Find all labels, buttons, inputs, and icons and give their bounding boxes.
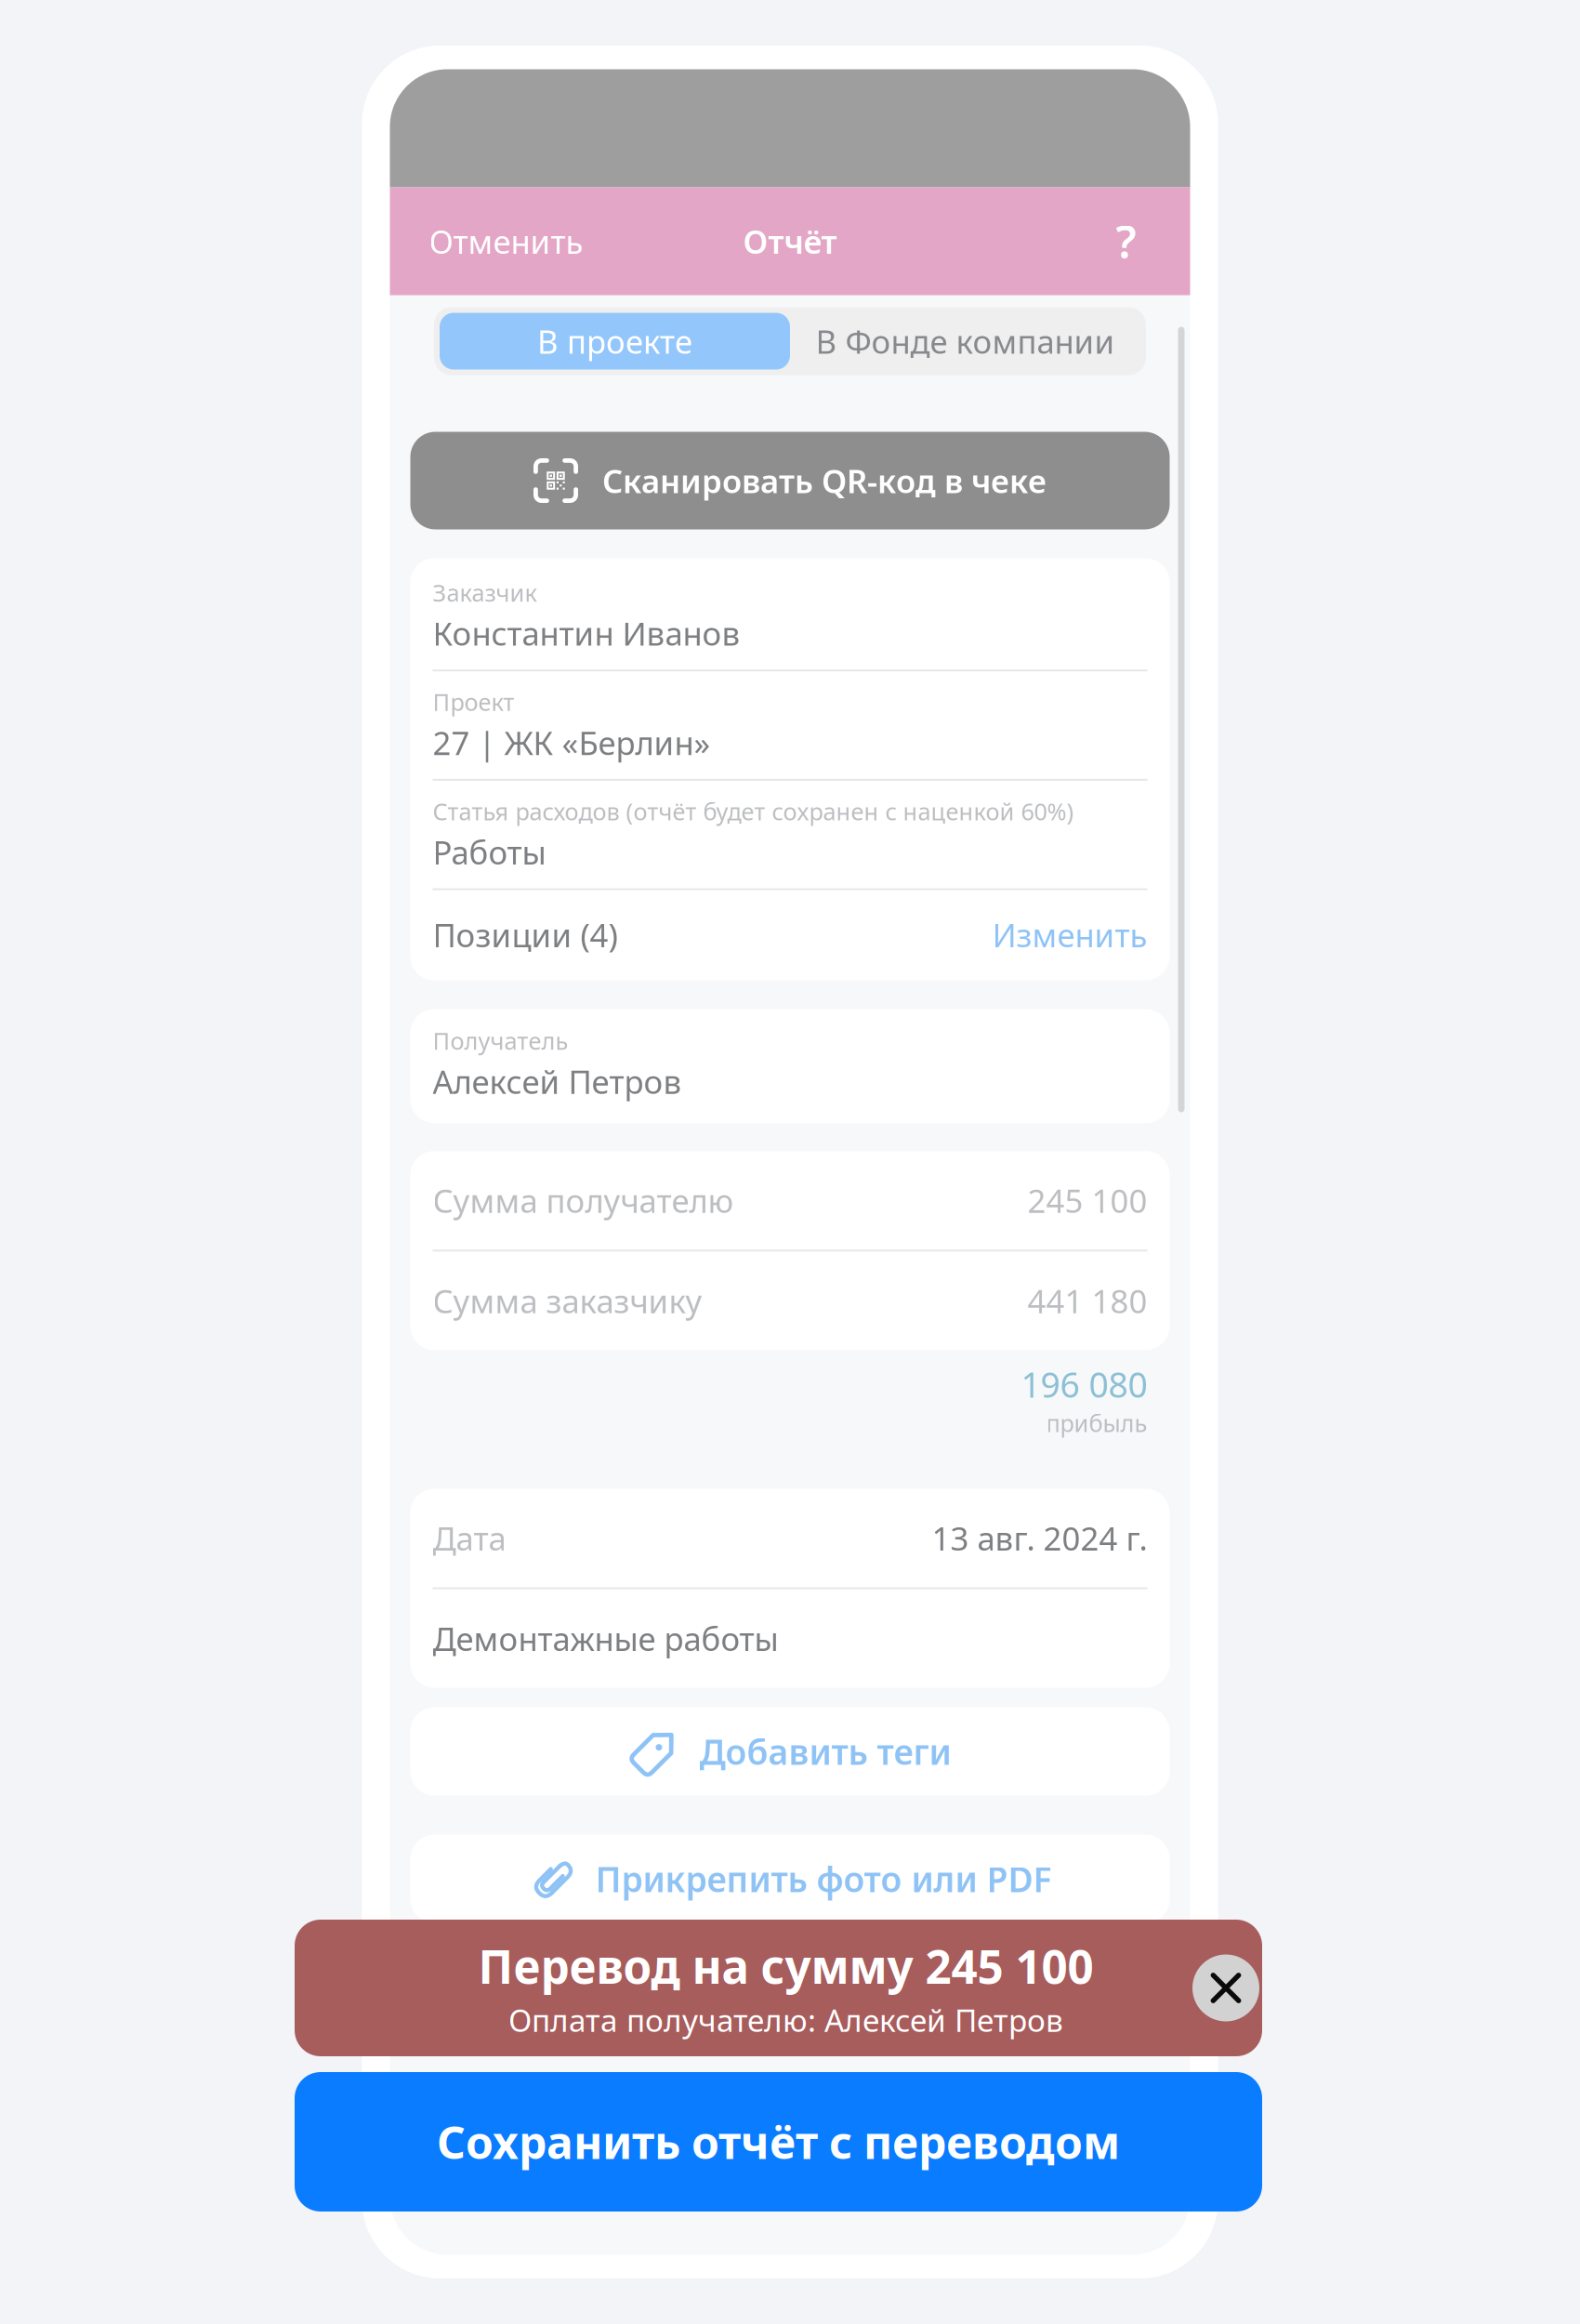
staticText: 27 | ЖК «Берлин»	[433, 721, 711, 764]
staticText: Сканировать QR-код в чеке	[602, 459, 1047, 502]
staticText: 441 180	[1027, 1279, 1147, 1322]
staticText: В проекте	[537, 320, 692, 363]
staticText: Сумма получателю	[433, 1179, 734, 1222]
staticText: Работы	[433, 831, 546, 873]
button[interactable]: Сохранить отчёт с переводом	[295, 2072, 1262, 2212]
staticText: Отчёт	[743, 220, 837, 263]
staticText: Прикрепить фото или PDF	[595, 1856, 1052, 1902]
button[interactable]: Справка	[1112, 187, 1140, 295]
staticText: Отменить	[429, 220, 583, 263]
staticText: Перевод на сумму 245 100	[478, 1936, 1093, 1996]
staticText: Демонтажные работы	[433, 1617, 778, 1660]
button[interactable]: Отменить	[429, 187, 583, 295]
staticText: ?	[1116, 212, 1136, 271]
staticText: 13 авг. 2024 г.	[932, 1517, 1147, 1559]
button[interactable]: В проекте	[440, 313, 790, 370]
staticText: 245 100	[1027, 1179, 1147, 1222]
staticText: Получатель	[433, 1025, 568, 1056]
staticText: В Фонде компании	[816, 320, 1115, 363]
staticText: Позиции (4)	[433, 913, 618, 956]
button[interactable]: В Фонде компании	[790, 313, 1140, 370]
staticText: Сохранить отчёт с переводом	[437, 2112, 1120, 2171]
button[interactable]: Закрыть	[1192, 1954, 1259, 2021]
button[interactable]: Добавить теги	[410, 1707, 1170, 1796]
staticText: 196 080	[1021, 1361, 1147, 1407]
staticText: прибыль	[1046, 1407, 1147, 1439]
staticText: Алексей Петров	[433, 1060, 682, 1103]
staticText: Изменить	[992, 913, 1147, 956]
button[interactable]: Изменить	[992, 913, 1147, 956]
staticText: Оплата получателю: Алексей Петров	[508, 1999, 1063, 2040]
staticText: Заказчик	[433, 577, 537, 608]
staticText: Сумма заказчику	[433, 1279, 702, 1322]
button[interactable]: Прикрепить фото или PDF	[410, 1835, 1170, 1923]
staticText: Дата	[433, 1517, 506, 1559]
staticText: Статья расходов (отчёт будет сохранен с …	[433, 796, 1074, 827]
staticText: Проект	[433, 686, 514, 717]
button[interactable]: Сканировать QR-код в чеке	[410, 432, 1170, 529]
staticText: Константин Иванов	[433, 612, 740, 655]
staticText: Добавить теги	[699, 1728, 951, 1775]
